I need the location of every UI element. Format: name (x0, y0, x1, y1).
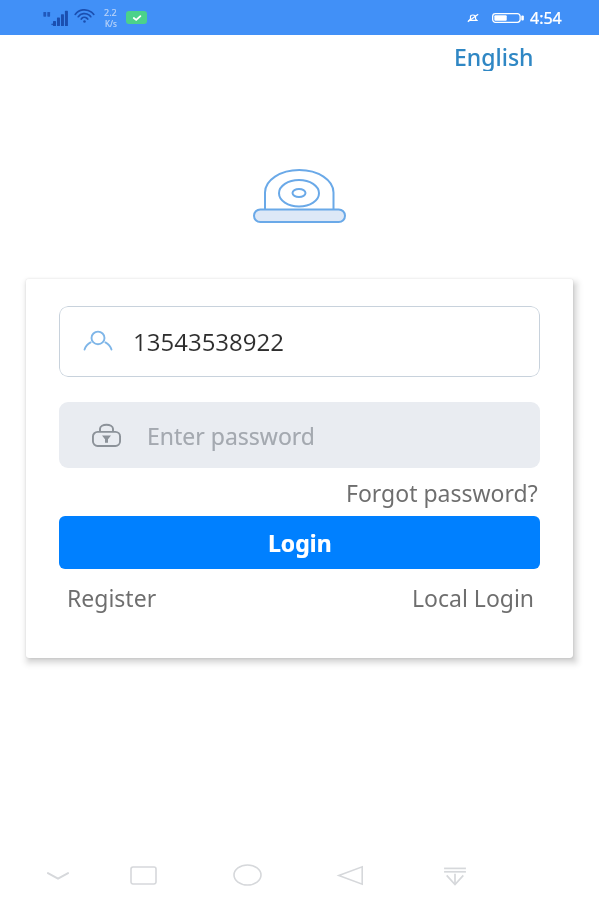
button[interactable]: Hide keyboard (31, 850, 85, 900)
staticText: 13543538922 (133, 325, 285, 358)
button[interactable]: Enter password (59, 402, 540, 468)
staticText: K/s (105, 18, 117, 29)
button[interactable]: Register (67, 579, 157, 616)
button[interactable]: Local Login (412, 579, 535, 616)
button[interactable]: Home (220, 850, 274, 900)
button[interactable]: 13543538922 (59, 306, 540, 377)
button[interactable]: Forgot password? (344, 475, 540, 510)
button[interactable]: English (446, 35, 542, 77)
staticText: English (454, 41, 534, 71)
staticText: 2.2 (104, 6, 117, 18)
button[interactable]: Back (323, 850, 377, 900)
staticText: Register (67, 582, 157, 613)
staticText: 4:54 (530, 7, 562, 29)
staticText: Enter password (147, 420, 316, 451)
staticText: Login (268, 527, 332, 558)
staticText: Forgot password? (346, 477, 538, 508)
staticText: Local Login (412, 582, 535, 613)
button[interactable]: Login (59, 516, 540, 569)
button[interactable]: Recent apps (116, 850, 170, 900)
button[interactable]: Collapse (428, 850, 482, 900)
